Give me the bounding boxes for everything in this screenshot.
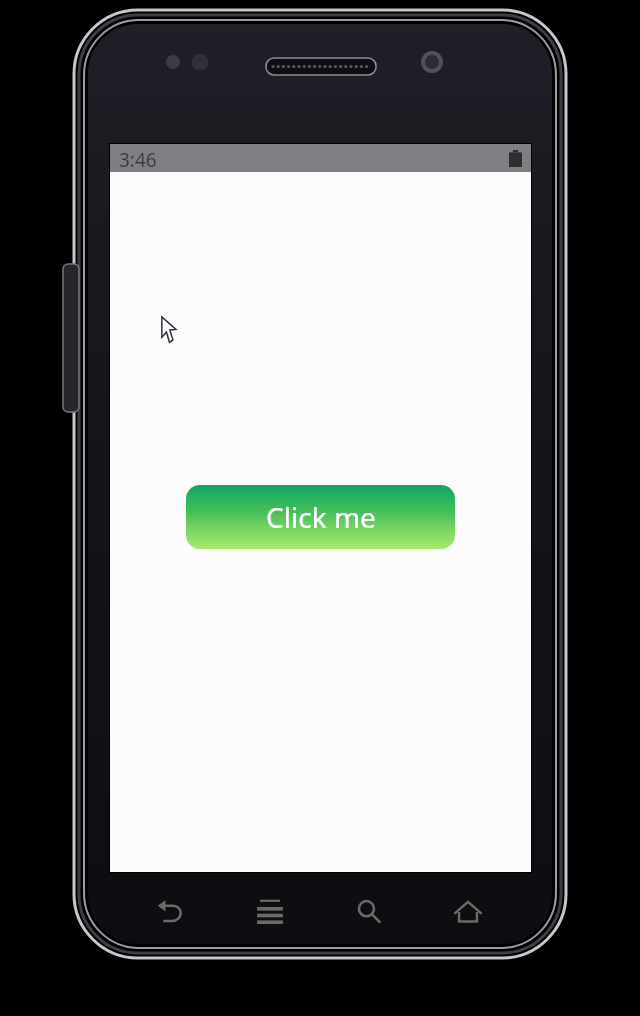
button[interactable]: Search [347, 890, 391, 934]
staticText: Click me [266, 498, 376, 536]
button[interactable]: Menu [248, 890, 292, 934]
button[interactable]: Back [148, 890, 192, 934]
button[interactable]: Click me [186, 485, 455, 549]
staticText: 3:46 [119, 147, 157, 173]
button[interactable]: Home [446, 890, 490, 934]
